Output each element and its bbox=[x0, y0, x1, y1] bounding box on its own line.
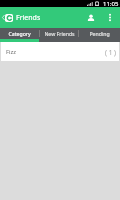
staticText: Fizz bbox=[6, 48, 16, 56]
button[interactable]: New Friends bbox=[40, 28, 78, 39]
button[interactable]: Pending bbox=[79, 28, 120, 39]
button[interactable]: Category bbox=[0, 28, 39, 39]
staticText: ( 1 ) bbox=[105, 48, 116, 57]
staticText: Friends bbox=[16, 13, 41, 23]
button[interactable]: Back bbox=[1, 7, 5, 28]
button[interactable]: More options bbox=[104, 7, 116, 28]
staticText: 11:05 bbox=[103, 0, 119, 7]
staticText: Category bbox=[8, 30, 31, 37]
button[interactable]: Fizz bbox=[1, 42, 119, 61]
button[interactable]: Add friend bbox=[84, 7, 98, 28]
staticText: Pending bbox=[89, 30, 110, 37]
staticText: New Friends bbox=[44, 30, 75, 37]
